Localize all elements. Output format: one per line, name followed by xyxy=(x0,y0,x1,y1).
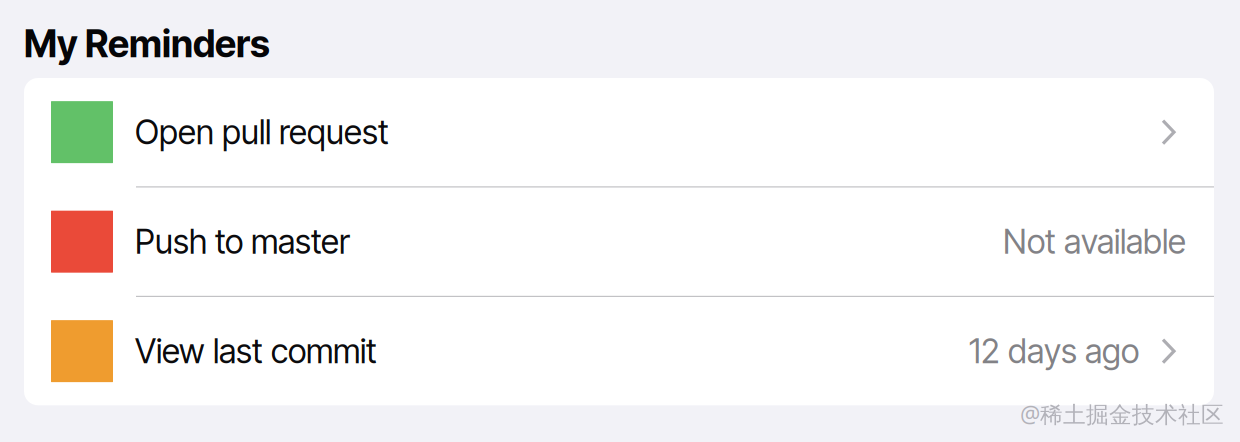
staticText: View last commit xyxy=(135,331,377,371)
staticText: Open pull request xyxy=(135,112,389,152)
staticText: My Reminders xyxy=(24,21,270,66)
staticText: Push to master xyxy=(135,221,350,262)
staticText: @稀土掘金技术社区 xyxy=(1020,399,1224,429)
button[interactable]: View last commit xyxy=(24,297,1214,405)
button[interactable]: Push to master xyxy=(24,187,1214,296)
button[interactable]: Open pull request xyxy=(24,78,1214,186)
staticText: 12 days ago xyxy=(969,331,1139,371)
staticText: Not available xyxy=(1003,221,1186,262)
